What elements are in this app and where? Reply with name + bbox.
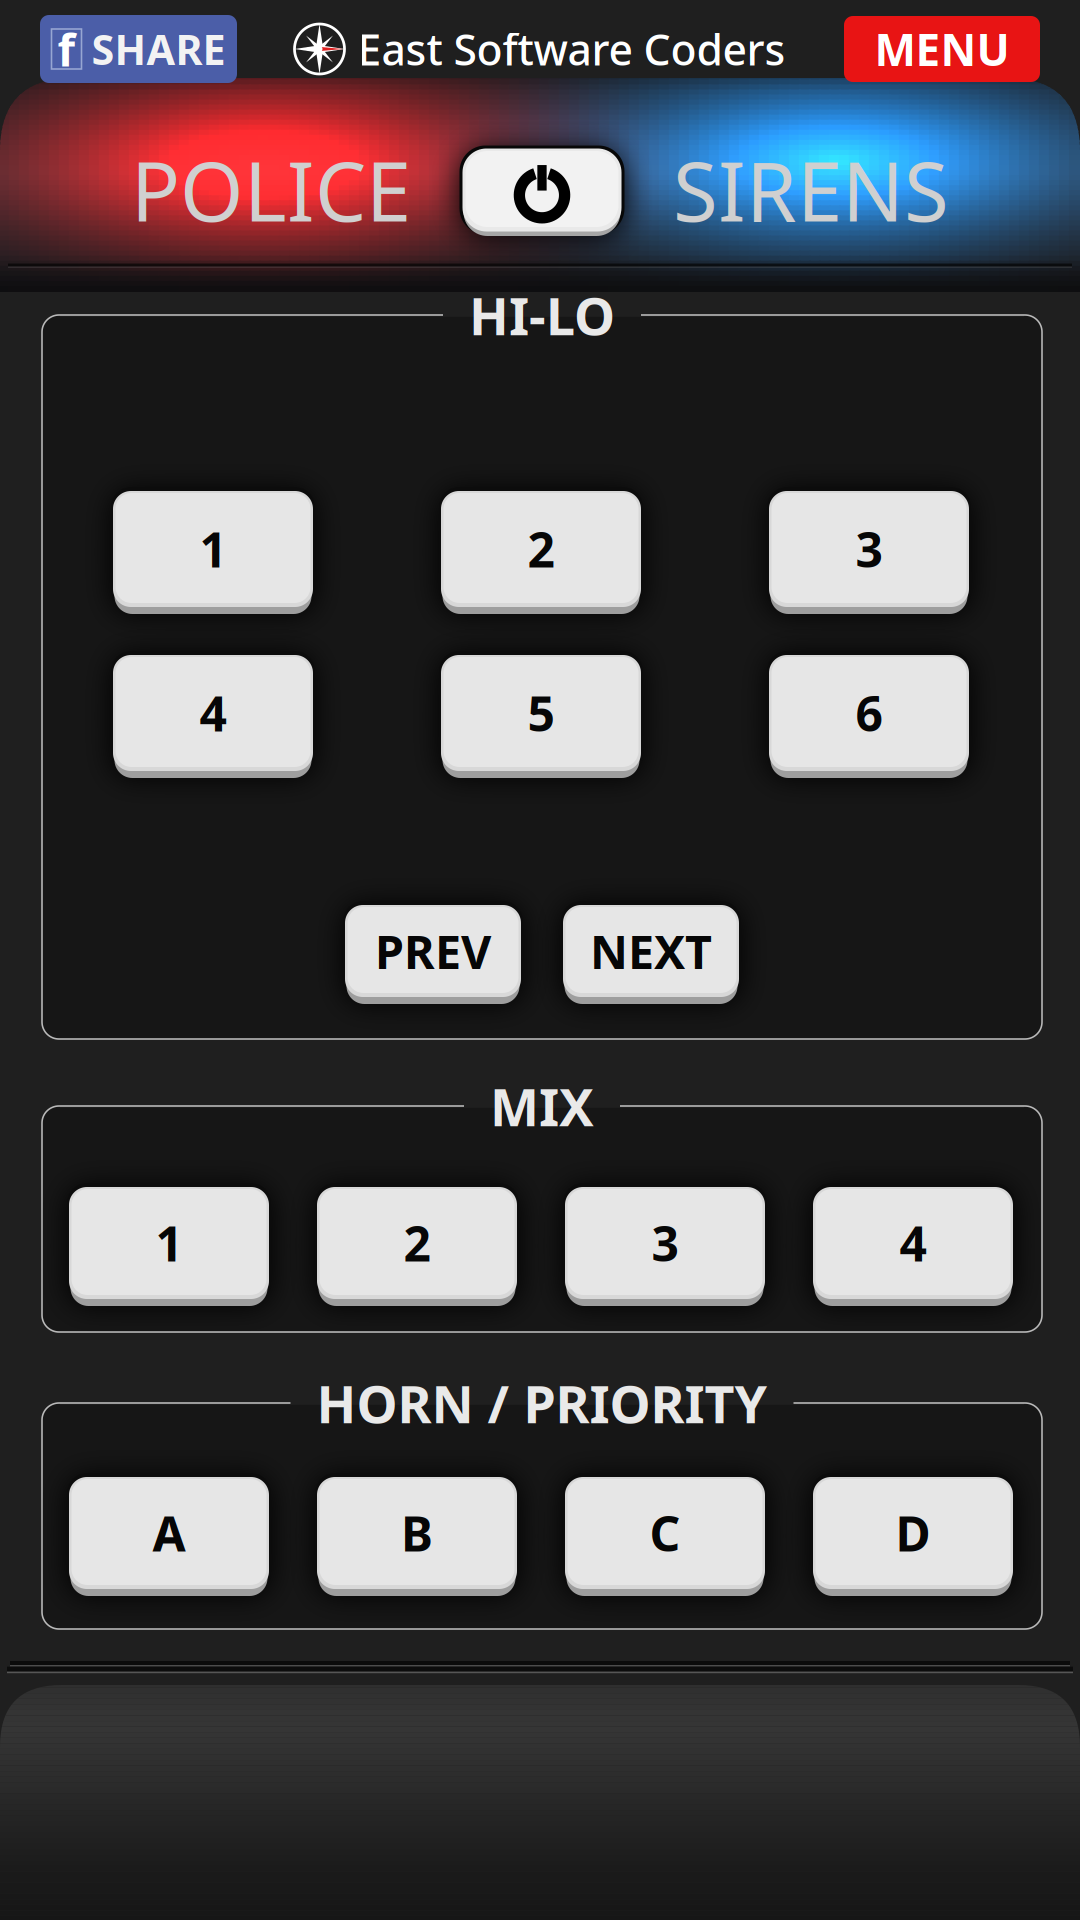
button[interactable]: 6: [759, 643, 979, 783]
button[interactable]: 4: [803, 1175, 1023, 1311]
staticText: SIRENS: [673, 136, 949, 244]
button[interactable]: 3: [759, 479, 979, 619]
staticText: B: [401, 1501, 433, 1565]
button[interactable]: MENU: [844, 16, 1040, 82]
button[interactable]: 3: [555, 1175, 775, 1311]
button[interactable]: PREV: [335, 893, 531, 1009]
staticText: PREV: [375, 920, 491, 982]
staticText: C: [649, 1501, 680, 1565]
staticText: NEXT: [590, 920, 712, 982]
staticText: 1: [199, 517, 226, 581]
staticText: MENU: [874, 20, 1009, 78]
staticText: 2: [403, 1211, 430, 1275]
button[interactable]: f: [40, 15, 237, 83]
button[interactable]: 4: [103, 643, 323, 783]
button[interactable]: NEXT: [553, 893, 749, 1009]
staticText: 2: [527, 517, 554, 581]
button[interactable]: 2: [307, 1175, 527, 1311]
staticText: HORN / PRIORITY: [316, 1368, 767, 1438]
staticText: 3: [855, 517, 882, 581]
button[interactable]: A: [59, 1465, 279, 1601]
staticText: East Software Coders: [357, 21, 785, 77]
staticText: HI-LO: [469, 280, 615, 350]
button[interactable]: Power: [453, 138, 631, 242]
staticText: 3: [651, 1211, 678, 1275]
button[interactable]: 1: [59, 1175, 279, 1311]
staticText: 4: [199, 681, 226, 745]
staticText: 4: [899, 1211, 926, 1275]
staticText: SHARE: [91, 22, 225, 76]
button[interactable]: 2: [431, 479, 651, 619]
staticText: D: [895, 1501, 930, 1565]
button[interactable]: D: [803, 1465, 1023, 1601]
staticText: A: [152, 1501, 185, 1565]
button[interactable]: 5: [431, 643, 651, 783]
staticText: POLICE: [131, 136, 411, 244]
staticText: 5: [527, 681, 554, 745]
button[interactable]: C: [555, 1465, 775, 1601]
staticText: MIX: [490, 1071, 594, 1141]
staticText: 1: [155, 1211, 182, 1275]
staticText: 6: [855, 681, 882, 745]
staticText: f: [57, 19, 75, 79]
button[interactable]: 1: [103, 479, 323, 619]
button[interactable]: B: [307, 1465, 527, 1601]
